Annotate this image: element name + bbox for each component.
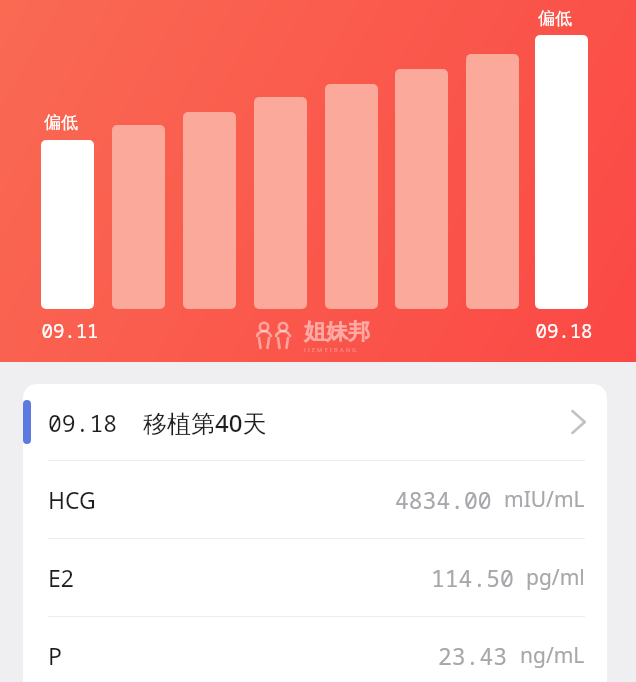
button[interactable]: HCG — [23, 461, 607, 538]
staticText: 移植第40天 — [143, 406, 267, 439]
staticText: mIU/mL — [504, 485, 585, 514]
staticText: 偏低 — [44, 112, 78, 133]
staticText: 114.50 — [431, 562, 514, 593]
staticText: E2 — [48, 562, 74, 593]
staticText: 09.11 — [38, 318, 102, 344]
staticText: 09.18 — [532, 318, 596, 344]
staticText: HCG — [48, 484, 96, 515]
staticText: ng/mL — [520, 641, 585, 670]
button[interactable]: 09.18 — [23, 384, 607, 460]
staticText: 4834.00 — [395, 484, 492, 515]
staticText: 23.43 — [438, 640, 508, 671]
staticText: 偏低 — [538, 8, 572, 29]
staticText: P — [48, 640, 62, 671]
other: View details — [563, 407, 593, 437]
button[interactable]: P — [23, 617, 607, 682]
staticText: pg/ml — [526, 563, 585, 592]
staticText: 09.18 — [48, 407, 118, 438]
button[interactable]: E2 — [23, 539, 607, 616]
staticText: 姐妹邦 — [304, 318, 370, 346]
staticText: JIEMEIBANG — [304, 346, 359, 352]
